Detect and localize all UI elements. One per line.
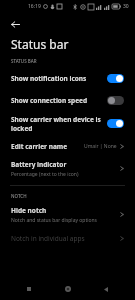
staticText: Edit carrier name [11,142,68,151]
button[interactable]: Back [97,280,115,298]
staticText: Notch and status bar display options [11,217,98,224]
staticText: Show carrier when device is locked [11,115,101,133]
button[interactable]: Battery indicator [0,156,135,181]
button[interactable]: Show notification icons [0,67,135,89]
button[interactable]: On [107,119,124,128]
button[interactable]: Edit carrier name [0,136,135,156]
button[interactable]: Hide notch [0,202,135,227]
button[interactable]: Show carrier when device is locked [0,111,135,136]
staticText: Notch in individual apps [11,234,85,243]
staticText: Hide notch [11,206,47,215]
staticText: NOTCH [11,193,27,199]
staticText: Show notification icons [11,74,87,83]
button[interactable]: Notch in individual apps [0,227,135,249]
button[interactable]: Recent apps [20,280,38,298]
staticText: Percentage (next to the icon) [11,171,79,178]
staticText: Umair | None [84,143,117,150]
button[interactable]: Home [59,280,77,298]
staticText: 30 [123,3,129,10]
staticText: Show connection speed [11,96,88,105]
button[interactable]: Back [7,16,24,33]
staticText: Status bar [11,36,69,52]
staticText: 16:19 [28,3,41,10]
staticText: Battery indicator [11,160,67,169]
button[interactable]: Show connection speed [0,89,135,111]
staticText: STATUS BAR [11,58,37,64]
button[interactable]: On [107,74,124,83]
button[interactable]: Off [107,96,124,105]
